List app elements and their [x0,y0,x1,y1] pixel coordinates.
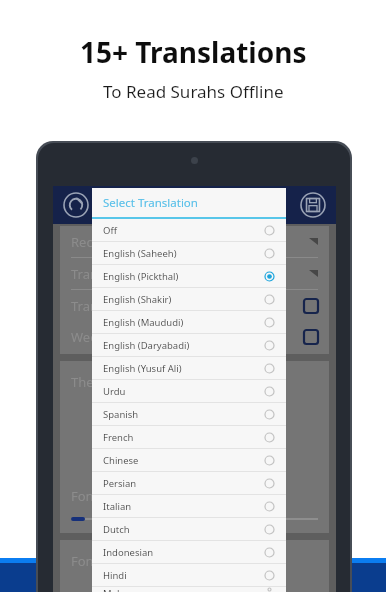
staticText: Font Size [71,487,126,505]
button[interactable]: English (Daryabadi) [92,334,286,356]
button[interactable]: Hindi [92,564,286,586]
button[interactable]: Indonesian [92,541,286,563]
staticText: Select Translation [103,195,198,211]
button[interactable]: Reciter [60,226,329,257]
button[interactable]: Italian [92,495,286,517]
staticText: Italian [103,500,264,513]
staticText: Spanish [103,408,264,421]
button[interactable]: Reset settings [61,190,91,220]
button[interactable]: English (Shakir) [92,288,286,310]
button[interactable]: Week Day Names [60,321,329,352]
staticText: Font Style [71,552,131,570]
button[interactable]: English (Saheeh) [92,242,286,264]
button[interactable]: Off [92,219,286,241]
staticText: English (Saheeh) [103,247,264,260]
staticText: English (Maududi) [103,316,264,329]
staticText: Theme [71,373,114,391]
button[interactable]: French [92,426,286,448]
staticText: Chinese [103,454,264,467]
button[interactable]: Persian [92,472,286,494]
button[interactable]: Spanish [92,403,286,425]
button[interactable]: Translation [60,258,329,289]
staticText: Dutch [103,523,264,536]
button[interactable] [71,515,318,523]
staticText: English (Shakir) [103,293,264,306]
button[interactable]: English (Pickthal) [92,265,286,287]
button[interactable]: Translation On [60,290,329,321]
staticText: Off [103,224,264,237]
staticText: French [103,431,264,444]
button[interactable]: Dutch [92,518,286,540]
staticText: Indonesian [103,546,264,559]
staticText: English (Pickthal) [103,270,264,283]
button[interactable]: Urdu [92,380,286,402]
staticText: Persian [103,477,264,490]
staticText: Reciter [71,233,309,251]
staticText: Urdu [103,385,264,398]
staticText: English (Daryabadi) [103,339,264,352]
staticText: 15+ Translations [80,33,307,71]
staticText: Translation [71,265,309,283]
staticText: Hindi [103,569,264,582]
button[interactable]: English (Maududi) [92,311,286,333]
button[interactable]: Melayu [92,587,286,592]
button[interactable]: Save settings [298,190,328,220]
button[interactable]: English (Yusuf Ali) [92,357,286,379]
button[interactable]: Chinese [92,449,286,471]
staticText: To Read Surahs Offline [103,80,284,103]
staticText: Translation On [71,297,304,315]
staticText: Week Day Names [71,328,304,346]
staticText: Melayu [103,587,264,592]
staticText: English (Yusuf Ali) [103,362,264,375]
